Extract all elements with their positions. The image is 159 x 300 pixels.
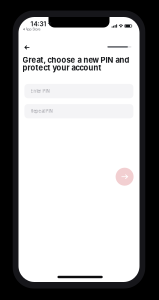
staticText: App Store bbox=[25, 27, 40, 31]
staticText: protect your account bbox=[22, 63, 101, 72]
staticText: Great, choose a new PIN and bbox=[22, 55, 129, 64]
button[interactable]: Next bbox=[116, 168, 134, 186]
staticText: 14:31 bbox=[30, 20, 46, 28]
button[interactable]: Enter PIN bbox=[24, 84, 133, 98]
button[interactable]: Back bbox=[20, 40, 35, 54]
staticText: Repeat PIN bbox=[31, 109, 53, 114]
button[interactable]: Repeat PIN bbox=[24, 104, 133, 118]
staticText: Enter PIN bbox=[31, 88, 50, 94]
